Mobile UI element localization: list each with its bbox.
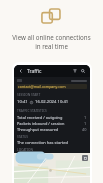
staticText: contact@mail.company.com — [18, 84, 66, 89]
staticText: 10:41 — [17, 99, 28, 105]
staticText: Total received / outgoing — [17, 115, 84, 120]
button[interactable]: Map layers — [82, 155, 88, 161]
button[interactable]: Search — [79, 67, 87, 75]
button[interactable]: Back — [17, 67, 25, 75]
staticText: The connection has started — [17, 140, 68, 145]
button[interactable]: Packets inbound / session — [17, 120, 87, 126]
button[interactable]: Throughput measured — [17, 126, 87, 132]
staticText: 1 — [84, 121, 87, 126]
staticText: 1 — [84, 115, 87, 120]
staticText: View all online connections in real time — [6, 33, 97, 51]
staticText: Throughput measured — [17, 127, 82, 132]
button[interactable]: Total received / outgoing — [17, 114, 87, 120]
button[interactable]: contact@mail.company.com — [17, 84, 87, 89]
staticText: 40 — [82, 127, 87, 132]
button[interactable]: App logo — [40, 9, 64, 23]
staticText: Packets inbound / session — [17, 121, 84, 126]
staticText: 16.02.2024 10:41 — [35, 99, 69, 105]
staticText: SESSION START — [17, 93, 41, 97]
staticText: LOCATION — [17, 148, 33, 152]
staticText: Traffic — [27, 68, 71, 75]
staticText: TRAFFIC STATISTICS — [17, 109, 47, 113]
staticText: STATUS — [17, 135, 29, 139]
button[interactable]: Filter — [71, 67, 79, 75]
